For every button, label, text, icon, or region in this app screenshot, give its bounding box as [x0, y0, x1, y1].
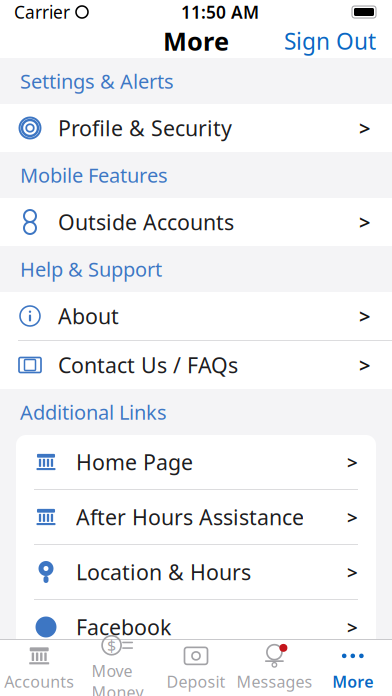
staticText: Home Page: [76, 448, 193, 476]
staticText: >: [347, 615, 358, 639]
staticText: Carrier: [14, 0, 70, 23]
button[interactable]: More: [314, 641, 392, 695]
staticText: About: [58, 302, 119, 330]
staticText: Move Money: [92, 660, 144, 696]
staticText: Location & Hours: [76, 558, 251, 586]
staticText: >: [359, 115, 370, 141]
staticText: Facebook: [76, 613, 171, 641]
button[interactable]: Profile & Security: [0, 104, 392, 152]
staticText: More: [332, 671, 373, 692]
staticText: Additional Links: [20, 399, 167, 425]
staticText: More: [163, 24, 229, 58]
staticText: Deposit: [166, 671, 225, 692]
button[interactable]: Outside Accounts: [0, 198, 392, 246]
staticText: >: [359, 303, 370, 329]
staticText: >: [347, 505, 358, 529]
staticText: Accounts: [4, 671, 74, 692]
staticText: Profile & Security: [58, 114, 232, 142]
staticText: Settings & Alerts: [20, 68, 174, 94]
staticText: Messages: [236, 671, 312, 692]
staticText: $: [107, 635, 116, 656]
button[interactable]: Messages: [235, 641, 314, 695]
button[interactable]: Facebook: [16, 600, 376, 654]
button[interactable]: About: [0, 292, 392, 340]
staticText: Contact Us / FAQs: [58, 351, 238, 379]
button[interactable]: After Hours Assistance: [16, 490, 376, 544]
staticText: After Hours Assistance: [76, 503, 304, 531]
staticText: Outside Accounts: [58, 208, 234, 236]
button[interactable]: Home Page: [16, 435, 376, 489]
staticText: Help & Support: [20, 256, 162, 282]
button[interactable]: Deposit: [157, 641, 235, 695]
staticText: >: [359, 209, 370, 235]
button[interactable]: Accounts: [0, 641, 78, 695]
staticText: 11:50 AM: [181, 0, 259, 23]
button[interactable]: Location & Hours: [16, 545, 376, 599]
staticText: Mobile Features: [20, 162, 168, 188]
staticText: >: [359, 352, 370, 378]
button[interactable]: $: [78, 641, 157, 695]
staticText: >: [347, 450, 358, 474]
staticText: >: [347, 560, 358, 584]
staticText: Sign Out: [284, 26, 376, 56]
button[interactable]: Sign Out: [268, 18, 392, 64]
button[interactable]: Contact Us / FAQs: [0, 341, 392, 389]
